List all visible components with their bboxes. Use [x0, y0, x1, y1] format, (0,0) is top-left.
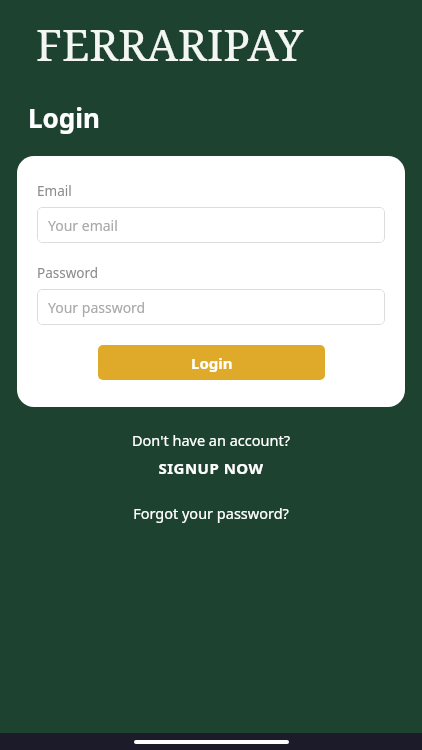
staticText: Forgot your password? — [133, 503, 289, 523]
button[interactable]: Don't have an account? — [122, 429, 300, 451]
staticText: SIGNUP NOW — [158, 458, 264, 478]
staticText: Your email — [48, 216, 118, 235]
button[interactable]: SIGNUP NOW — [148, 457, 274, 479]
staticText: Login — [191, 353, 233, 373]
button[interactable]: Login — [98, 345, 325, 380]
staticText: FERRARIPAY — [36, 14, 303, 74]
other: Home — [134, 740, 289, 744]
button[interactable]: Your email — [37, 207, 385, 243]
staticText: Password — [37, 264, 99, 282]
button[interactable]: Forgot your password? — [123, 502, 299, 524]
button[interactable]: Your password — [37, 289, 385, 325]
staticText: Your password — [48, 298, 146, 317]
staticText: Login — [28, 100, 100, 135]
staticText: Don't have an account? — [132, 430, 290, 450]
staticText: Email — [37, 182, 72, 200]
